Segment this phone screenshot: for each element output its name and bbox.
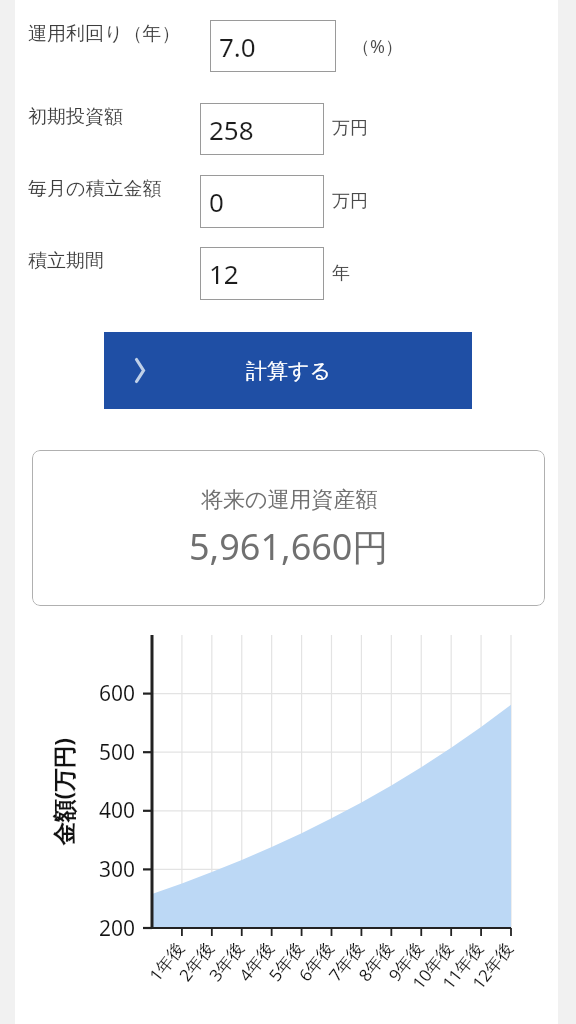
- button[interactable]: 0: [200, 175, 324, 228]
- staticText: 7.0: [219, 29, 256, 64]
- staticText: （%）: [352, 34, 403, 59]
- button[interactable]: 7.0: [210, 20, 336, 72]
- staticText: 運用利回り（年）: [28, 22, 181, 46]
- staticText: 毎月の積立金額: [28, 177, 162, 201]
- staticText: 年: [332, 262, 350, 285]
- button[interactable]: 12: [200, 247, 324, 300]
- staticText: 初期投資額: [28, 105, 123, 129]
- button[interactable]: 将来の運用資産額: [32, 450, 545, 606]
- staticText: 258: [209, 112, 254, 147]
- staticText: 計算する: [246, 358, 331, 384]
- button[interactable]: 258: [200, 103, 324, 155]
- staticText: 0: [209, 184, 224, 219]
- staticText: 5,961,660円: [189, 522, 389, 571]
- staticText: 将来の運用資産額: [201, 486, 378, 514]
- button[interactable]: 計算する: [104, 332, 472, 409]
- staticText: 積立期間: [28, 249, 104, 273]
- staticText: 万円: [332, 190, 368, 213]
- staticText: 12: [209, 256, 239, 291]
- staticText: 万円: [332, 117, 368, 140]
